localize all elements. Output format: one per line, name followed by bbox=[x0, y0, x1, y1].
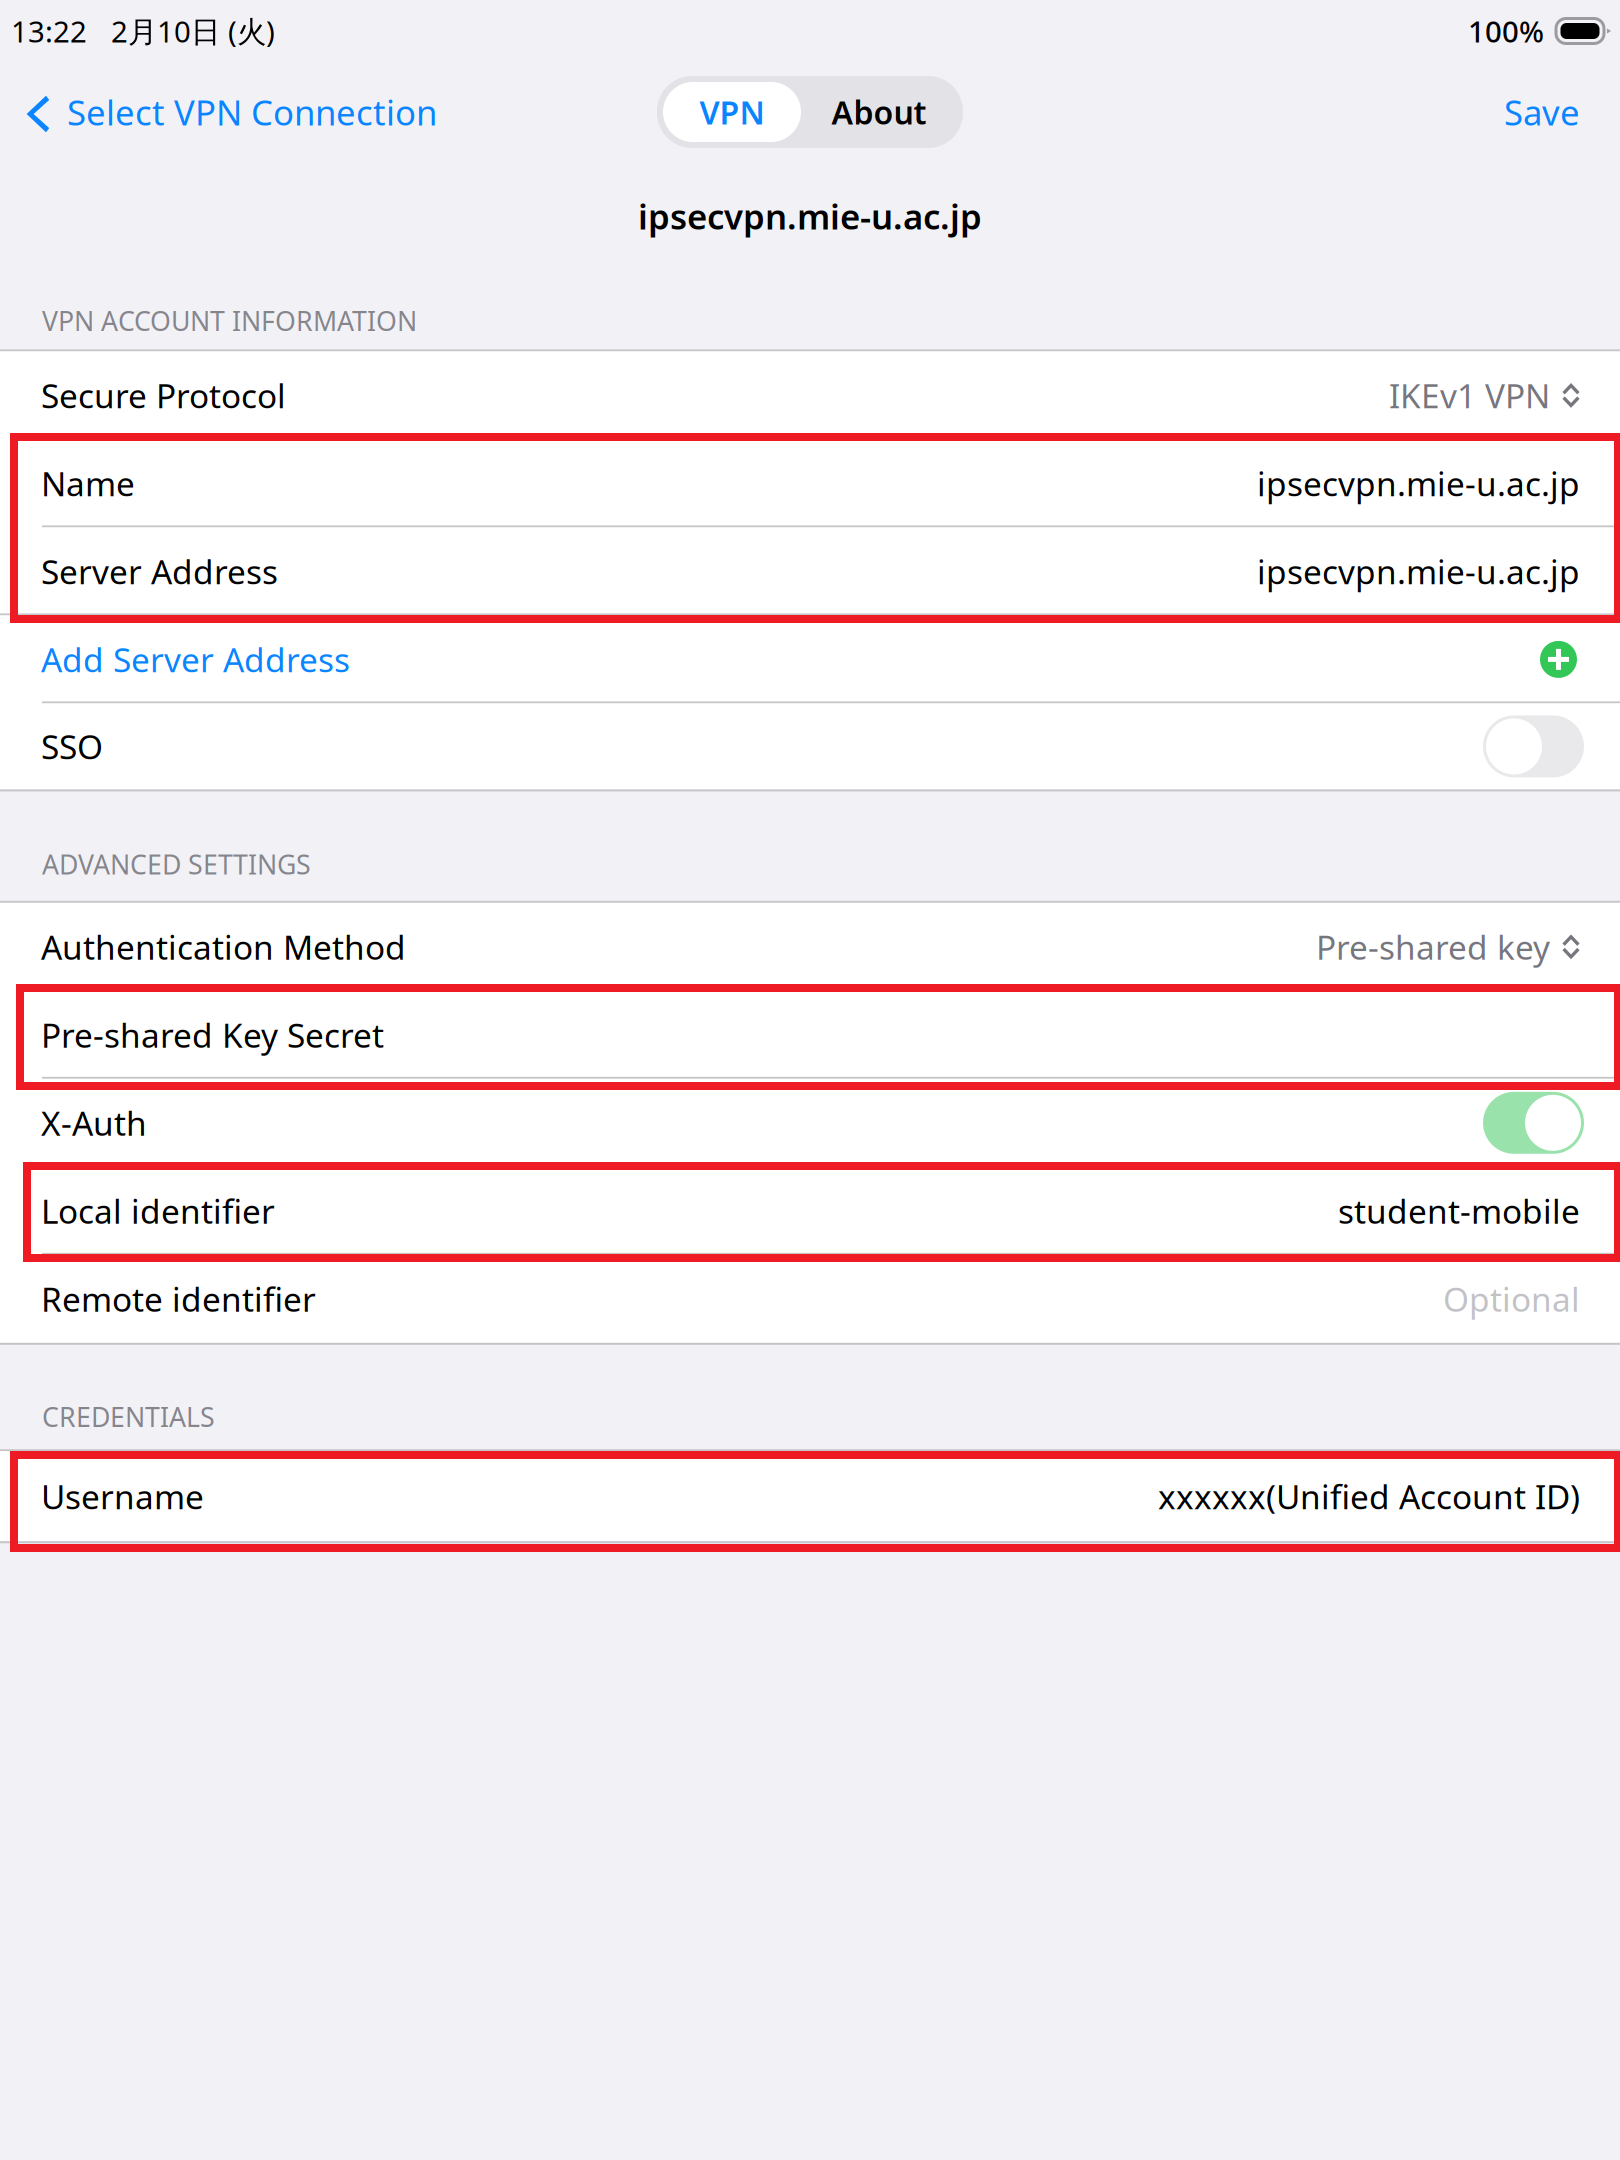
button[interactable]: Select VPN Connection bbox=[0, 62, 457, 162]
staticText: Pre-shared Key Secret bbox=[41, 1013, 384, 1057]
staticText: Username bbox=[41, 1474, 204, 1518]
staticText: 100% bbox=[1468, 11, 1544, 50]
staticText: VPN ACCOUNT INFORMATION bbox=[42, 303, 417, 338]
button[interactable]: VPN bbox=[663, 82, 801, 142]
staticText: About bbox=[831, 91, 926, 133]
staticText: Pre-shared key bbox=[1316, 925, 1550, 969]
button[interactable]: Save bbox=[1478, 62, 1620, 162]
staticText: SSO bbox=[41, 724, 103, 769]
staticText: student-mobile bbox=[1338, 1189, 1580, 1233]
staticText: ipsecvpn.mie-u.ac.jp bbox=[1257, 461, 1580, 506]
staticText: Secure Protocol bbox=[41, 373, 286, 418]
button[interactable]: About bbox=[801, 82, 957, 142]
staticText: Local identifier bbox=[41, 1189, 275, 1233]
staticText: 13:22 2月10日 (火) bbox=[11, 11, 275, 50]
staticText: IKEv1 VPN bbox=[1389, 373, 1550, 418]
staticText: Remote identifier bbox=[41, 1277, 316, 1321]
staticText: ipsecvpn.mie-u.ac.jp bbox=[1257, 549, 1580, 594]
button[interactable]: X-Auth toggle bbox=[1483, 1092, 1584, 1154]
button[interactable]: SSO toggle bbox=[1483, 715, 1584, 777]
staticText: Name bbox=[41, 461, 135, 506]
button[interactable]: Add Server Address bbox=[0, 615, 1620, 703]
staticText: X-Auth bbox=[41, 1101, 147, 1145]
staticText: xxxxxx(Unified Account ID) bbox=[1158, 1474, 1580, 1518]
staticText: Save bbox=[1504, 89, 1580, 135]
staticText: Server Address bbox=[41, 549, 278, 594]
staticText: CREDENTIALS bbox=[42, 1399, 215, 1434]
staticText: Add Server Address bbox=[41, 637, 350, 682]
staticText: ipsecvpn.mie-u.ac.jp bbox=[638, 193, 982, 239]
staticText: VPN bbox=[699, 91, 764, 133]
staticText: ADVANCED SETTINGS bbox=[42, 846, 311, 882]
staticText: Select VPN Connection bbox=[67, 89, 437, 135]
staticText: Optional bbox=[1443, 1277, 1580, 1321]
staticText: Authentication Method bbox=[41, 925, 406, 969]
